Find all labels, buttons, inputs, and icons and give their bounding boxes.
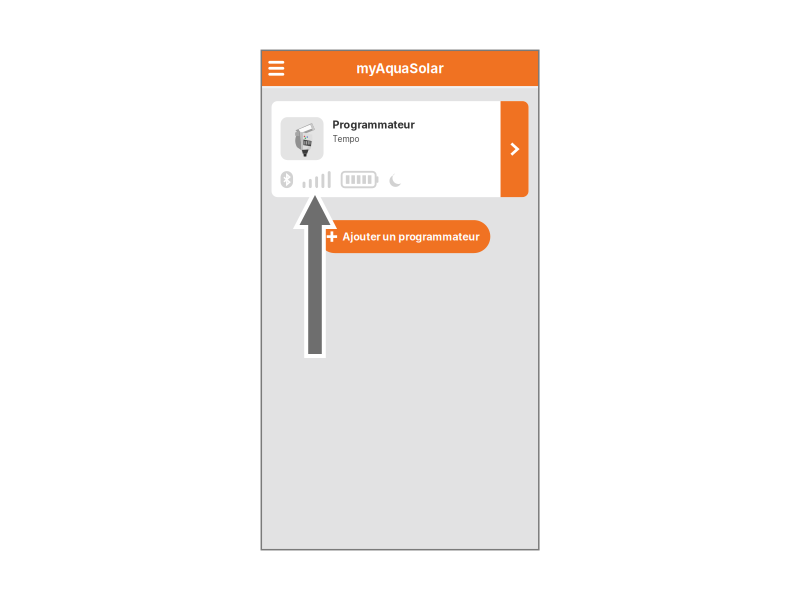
staticText: Tempo [333,134,360,144]
button[interactable]: Ajouter un programmateur [318,220,490,253]
staticText: Ajouter un programmateur [342,230,479,243]
staticText: Programmateur [333,118,415,131]
staticText: myAquaSolar [357,60,444,76]
button[interactable]: Menu [261,51,294,86]
button[interactable]: Open Programmateur [501,101,529,197]
button[interactable]: Programmateur [272,101,501,197]
